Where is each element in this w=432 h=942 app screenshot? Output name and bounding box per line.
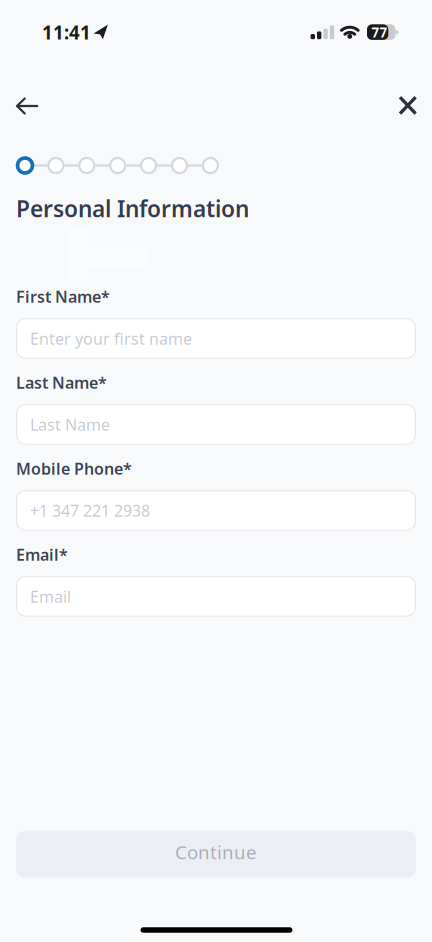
staticText: Email* xyxy=(16,544,68,565)
button[interactable]: Continue xyxy=(16,831,416,877)
button[interactable]: Enter your first name xyxy=(16,318,416,359)
button[interactable]: +1 347 221 2938 xyxy=(16,490,416,531)
staticText: Enter your first name xyxy=(30,328,192,349)
staticText: 77 xyxy=(371,23,387,41)
button[interactable]: Email xyxy=(16,576,416,617)
button[interactable]: Back xyxy=(5,84,49,128)
staticText: Last Name xyxy=(30,414,110,435)
button[interactable]: Close xyxy=(386,83,430,127)
staticText: Last Name* xyxy=(16,372,107,393)
staticText: Mobile Phone* xyxy=(16,458,132,479)
button[interactable]: Last Name xyxy=(16,404,416,445)
staticText: First Name* xyxy=(16,286,110,307)
staticText: Personal Information xyxy=(16,193,249,223)
staticText: Email xyxy=(30,586,71,607)
staticText: 11:41 xyxy=(42,20,91,45)
staticText: +1 347 221 2938 xyxy=(30,500,150,521)
staticText: Continue xyxy=(175,840,257,864)
